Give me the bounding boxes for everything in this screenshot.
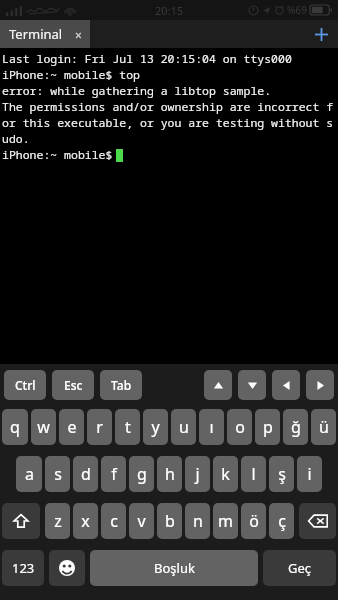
button[interactable]: g: [129, 456, 154, 492]
button[interactable]: x: [73, 503, 98, 539]
button[interactable]: d: [73, 456, 98, 492]
staticText: h: [165, 463, 175, 485]
button[interactable]: Ctrl: [4, 370, 46, 400]
button[interactable]: p: [255, 409, 280, 445]
staticText: ç: [278, 510, 286, 532]
button[interactable]: Esc: [52, 370, 94, 400]
button[interactable]: Arrow right: [306, 370, 334, 400]
staticText: f: [111, 463, 117, 485]
staticText: e: [67, 416, 77, 438]
button[interactable]: r: [87, 409, 112, 445]
button[interactable]: h: [157, 456, 182, 492]
button[interactable]: t: [115, 409, 140, 445]
button[interactable]: f: [101, 456, 126, 492]
staticText: 20:15: [155, 3, 184, 18]
button[interactable]: q: [2, 409, 28, 445]
button[interactable]: k: [213, 456, 238, 492]
button[interactable]: c: [101, 503, 126, 539]
staticText: o: [235, 416, 245, 438]
staticText: Boşluk: [154, 559, 195, 577]
staticText: b: [165, 510, 175, 532]
button[interactable]: ç: [269, 503, 294, 539]
staticText: ö: [249, 510, 259, 532]
button[interactable]: e: [59, 409, 84, 445]
staticText: y: [151, 416, 160, 438]
button[interactable]: z: [45, 503, 70, 539]
staticText: n: [193, 510, 203, 532]
staticText: ğ: [291, 416, 301, 438]
staticText: q: [10, 416, 20, 438]
button[interactable]: 123: [2, 550, 44, 586]
staticText: Last login: Fri Jul 13 20:15:04 on ttys0…: [2, 51, 292, 67]
staticText: z: [54, 510, 62, 532]
button[interactable]: u: [171, 409, 196, 445]
button[interactable]: Backspace: [299, 503, 336, 539]
button[interactable]: n: [185, 503, 210, 539]
staticText: x: [81, 510, 90, 532]
staticText: Geç: [288, 559, 312, 577]
staticText: i: [307, 463, 312, 485]
staticText: t: [125, 416, 131, 438]
button[interactable]: Tab: [100, 370, 142, 400]
staticText: ü: [319, 416, 329, 438]
staticText: or this executable, or you are testing w…: [2, 115, 334, 131]
button[interactable]: Arrow left: [272, 370, 300, 400]
button[interactable]: a: [16, 456, 42, 492]
button[interactable]: Emoji: [49, 550, 85, 586]
staticText: a: [25, 463, 34, 485]
staticText: Esc: [64, 377, 83, 393]
staticText: Terminal: [9, 25, 63, 43]
staticText: Tab: [111, 377, 132, 393]
staticText: p: [263, 416, 273, 438]
staticText: 123: [12, 559, 35, 577]
staticText: %69: [287, 3, 307, 17]
button[interactable]: Arrow up: [204, 370, 232, 400]
button[interactable]: s: [45, 456, 70, 492]
button[interactable]: y: [143, 409, 168, 445]
button[interactable]: ğ: [283, 409, 308, 445]
staticText: udo.: [2, 131, 30, 147]
button[interactable]: New tab: [304, 20, 338, 48]
staticText: iPhone:~ mobile$: [2, 147, 120, 163]
staticText: w: [37, 416, 50, 438]
button[interactable]: ü: [311, 409, 336, 445]
staticText: v: [137, 510, 146, 532]
button[interactable]: Boşluk: [90, 550, 258, 586]
button[interactable]: b: [157, 503, 182, 539]
button[interactable]: ı: [199, 409, 224, 445]
button[interactable]: ş: [269, 456, 294, 492]
staticText: The permissions and/or ownership are inc…: [2, 99, 334, 115]
staticText: error: while gathering a libtop sample.: [2, 83, 272, 99]
button[interactable]: Shift: [2, 503, 40, 539]
staticText: ş: [278, 463, 286, 485]
staticText: g: [137, 463, 147, 485]
button[interactable]: l: [241, 456, 266, 492]
button[interactable]: v: [129, 503, 154, 539]
button[interactable]: o: [227, 409, 252, 445]
staticText: u: [179, 416, 189, 438]
button[interactable]: Arrow down: [238, 370, 266, 400]
button[interactable]: w: [31, 409, 56, 445]
button[interactable]: Close tab: [71, 27, 85, 41]
staticText: ×: [75, 27, 82, 41]
staticText: j: [195, 463, 200, 485]
button[interactable]: Last login: Fri Jul 13 20:15:04 on ttys0…: [0, 48, 338, 364]
staticText: Ctrl: [15, 377, 36, 393]
button[interactable]: m: [213, 503, 238, 539]
staticText: ı: [209, 416, 214, 438]
button[interactable]: j: [185, 456, 210, 492]
staticText: r: [96, 416, 103, 438]
staticText: k: [221, 463, 230, 485]
button[interactable]: Terminal: [0, 20, 90, 48]
staticText: d: [81, 463, 91, 485]
button[interactable]: i: [297, 456, 322, 492]
button[interactable]: ö: [241, 503, 266, 539]
staticText: c: [110, 510, 118, 532]
staticText: l: [251, 463, 256, 485]
button[interactable]: Geç: [263, 550, 336, 586]
staticText: iPhone:~ mobile$ top: [2, 67, 140, 83]
staticText: s: [54, 463, 62, 485]
staticText: m: [218, 510, 233, 532]
